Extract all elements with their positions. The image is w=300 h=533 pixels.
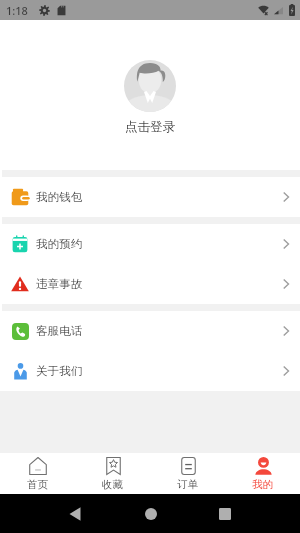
staticText: 首页 — [27, 478, 48, 491]
button[interactable]: 首页 — [0, 453, 75, 494]
button[interactable]: Recents — [212, 501, 237, 526]
button[interactable]: 关于我们 — [0, 351, 300, 391]
staticText: 点击登录 — [125, 119, 175, 135]
staticText: 订单 — [177, 478, 198, 491]
button[interactable]: 我的预约 — [0, 224, 300, 264]
button[interactable]: 收藏 — [75, 453, 150, 494]
button[interactable]: Back — [62, 501, 87, 526]
button[interactable]: 我的钱包 — [0, 177, 300, 217]
button[interactable]: 客服电话 — [0, 311, 300, 351]
button[interactable]: 违章事故 — [0, 264, 300, 304]
staticText: 违章事故 — [36, 277, 83, 292]
staticText: 关于我们 — [36, 364, 83, 379]
staticText: 我的钱包 — [36, 190, 83, 205]
button[interactable]: 我的 — [225, 453, 300, 494]
staticText: 我的预约 — [36, 237, 83, 252]
staticText: 我的 — [252, 478, 273, 491]
staticText: 收藏 — [102, 478, 123, 491]
staticText: 客服电话 — [36, 324, 83, 339]
staticText: 1:18 — [6, 3, 28, 18]
button[interactable]: 订单 — [150, 453, 225, 494]
button[interactable]: Home — [138, 501, 163, 526]
